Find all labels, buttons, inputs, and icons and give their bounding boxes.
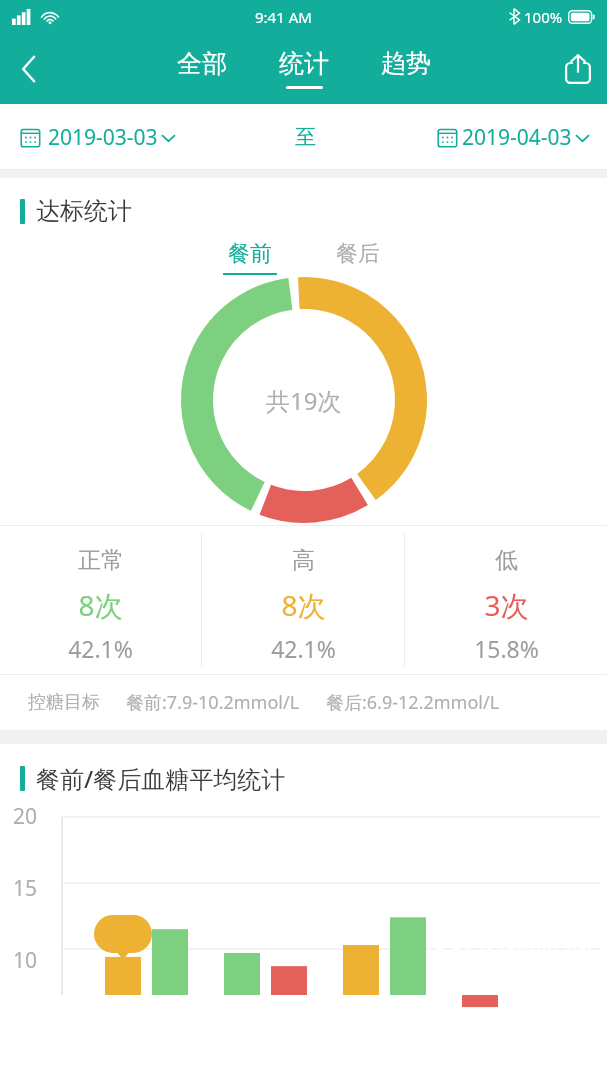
staticText: 2019-04-03: [462, 123, 572, 152]
staticText: 9:41 AM: [255, 7, 312, 27]
staticText: 10: [13, 946, 38, 975]
button[interactable]: Back: [0, 33, 58, 104]
staticText: 餐后: [336, 240, 380, 268]
button[interactable]: 高: [202, 526, 404, 674]
staticText: 8次: [281, 586, 326, 624]
button[interactable]: 餐后: [329, 240, 387, 275]
staticText: 2019-03-03: [48, 123, 158, 152]
staticText: 趋势: [381, 48, 431, 79]
staticText: 餐前: [228, 240, 272, 268]
staticText: 共19次: [266, 384, 342, 417]
staticText: 高: [292, 546, 315, 575]
button[interactable]: Share: [549, 33, 607, 104]
button[interactable]: 正常: [0, 526, 201, 674]
staticText: 全部: [177, 48, 227, 79]
button[interactable]: 2019-03-03: [20, 123, 175, 152]
staticText: 餐前/餐后血糖平均统计: [36, 762, 286, 795]
button[interactable]: 全部: [173, 48, 231, 89]
button[interactable]: 统计: [275, 48, 333, 89]
staticText: 42.1%: [68, 633, 133, 664]
staticText: 至: [295, 124, 316, 150]
staticText: 达标统计: [36, 196, 132, 226]
staticText: 3次: [484, 586, 529, 624]
staticText: 低: [495, 546, 518, 575]
staticText: 42.1%: [271, 633, 336, 664]
staticText: 正常: [78, 546, 124, 575]
staticText: 20: [13, 802, 38, 831]
button[interactable]: 低: [405, 526, 607, 674]
staticText: 控糖目标: [28, 691, 100, 714]
staticText: 餐后:6.9-12.2mmol/L: [326, 690, 500, 715]
button[interactable]: 2019-04-03: [437, 123, 589, 152]
staticText: 15: [13, 874, 38, 903]
staticText: 餐前:7.9-10.2mmol/L: [126, 690, 300, 715]
button[interactable]: 趋势: [377, 48, 435, 89]
staticText: 8次: [78, 586, 123, 624]
button[interactable]: 餐前: [221, 240, 279, 275]
staticText: 100%: [524, 7, 563, 27]
staticText: 15.8%: [474, 633, 539, 664]
staticText: 统计: [279, 48, 329, 79]
